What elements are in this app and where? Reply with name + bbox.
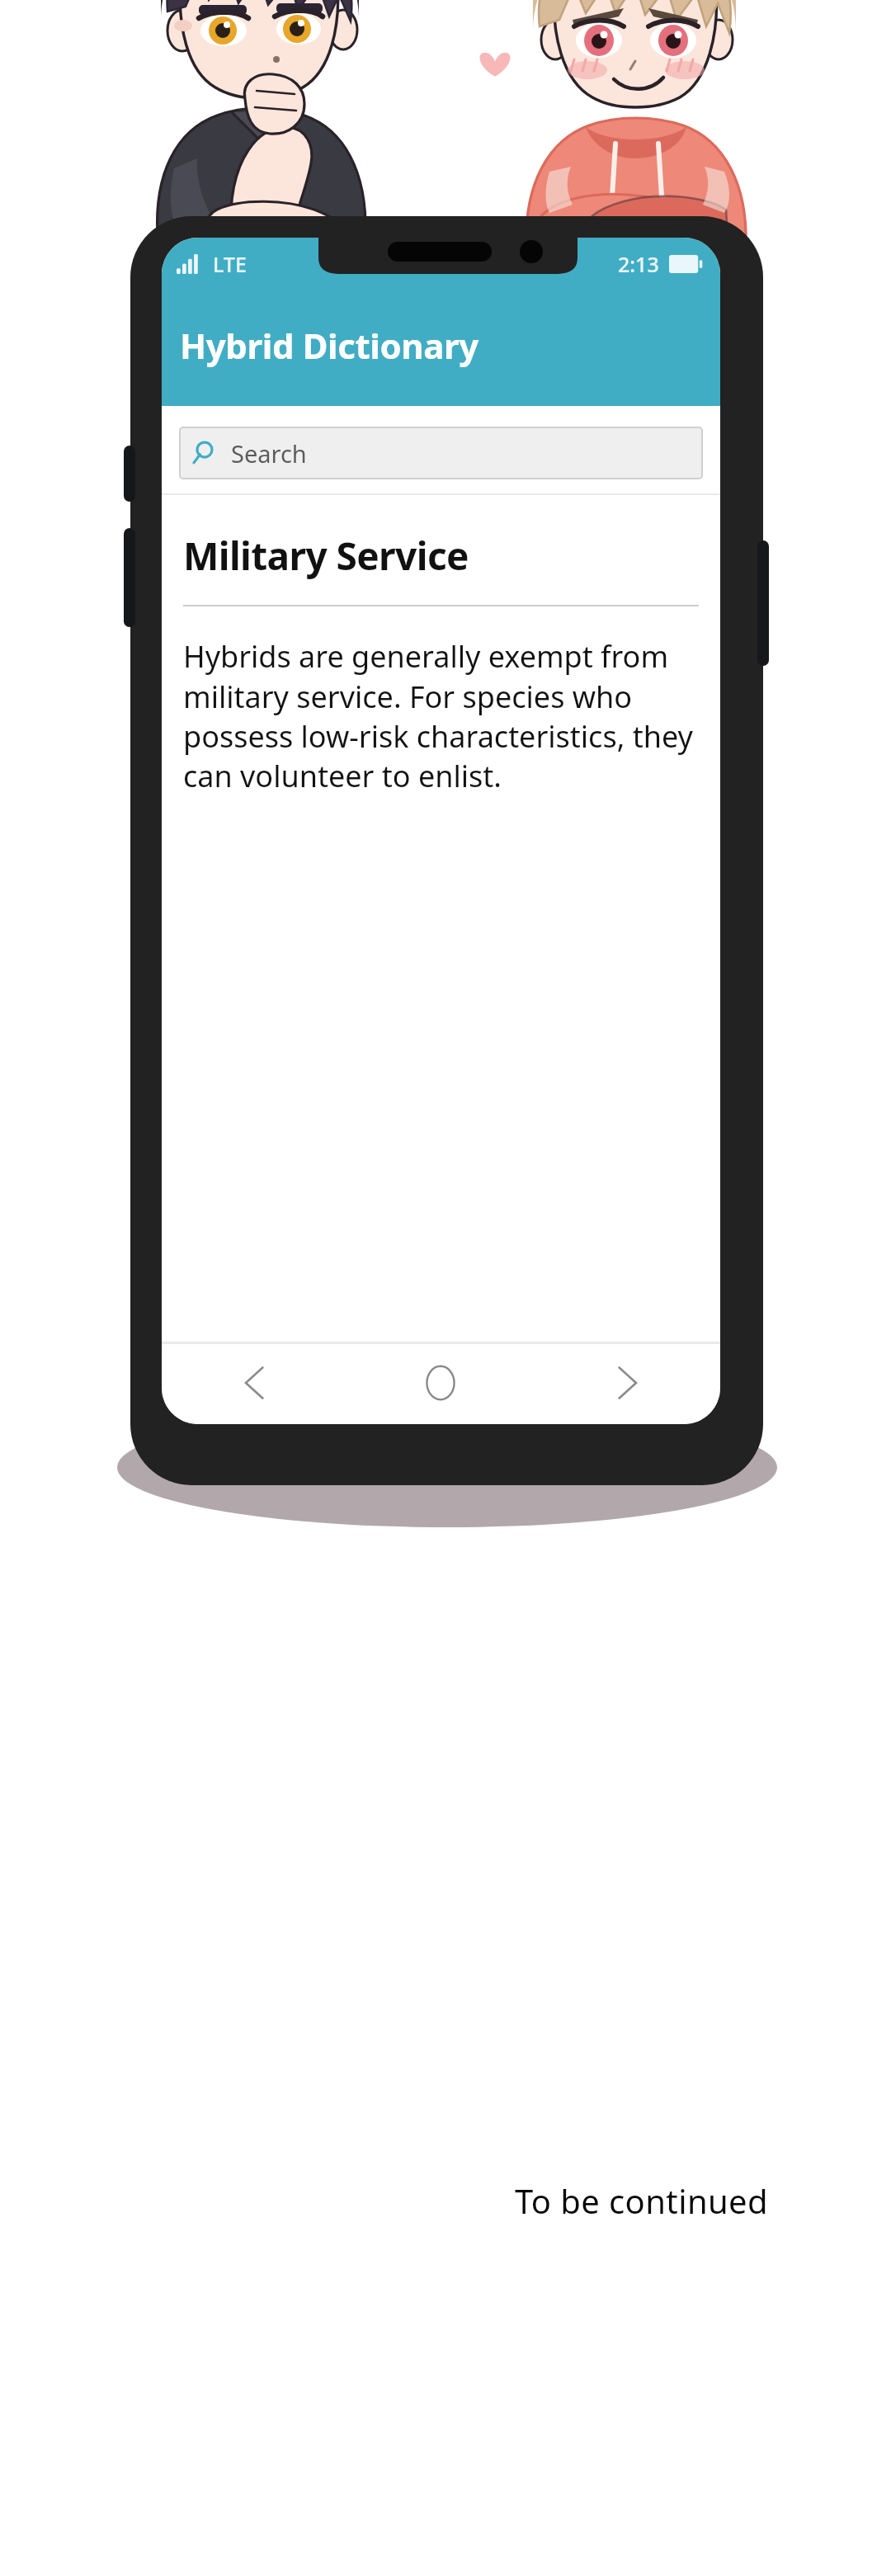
button[interactable]: Home	[347, 1342, 534, 1424]
staticText: LTE	[213, 250, 247, 278]
staticText: Military Service	[183, 530, 469, 582]
staticText: Search	[231, 437, 307, 469]
staticText: Hybrids are generally exempt from milita…	[183, 636, 699, 795]
button[interactable]: Search	[180, 427, 702, 479]
staticText: To be continued	[515, 2178, 769, 2223]
staticText: Hybrid Dictionary	[180, 322, 478, 369]
staticText: 2:13	[618, 250, 659, 278]
button[interactable]: Forward	[534, 1342, 720, 1424]
button[interactable]: Back	[162, 1342, 347, 1424]
